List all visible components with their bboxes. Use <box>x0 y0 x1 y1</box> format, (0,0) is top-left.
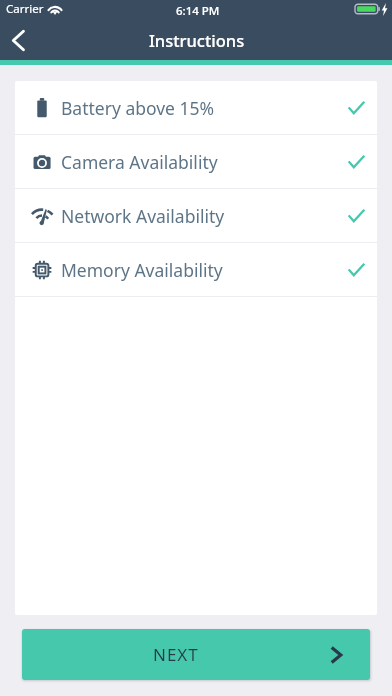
button[interactable]: Camera Availability <box>15 135 377 188</box>
staticText: Network Availability <box>61 204 225 228</box>
button[interactable]: Battery above 15% <box>15 81 377 134</box>
staticText: Battery above 15% <box>61 96 215 120</box>
staticText: NEXT <box>153 643 199 666</box>
button[interactable]: Network Availability <box>15 189 377 242</box>
staticText: 6:14 PM <box>176 3 220 19</box>
staticText: Carrier <box>6 1 44 17</box>
staticText: Camera Availability <box>61 150 218 174</box>
button[interactable]: Back <box>0 20 40 60</box>
button[interactable]: Memory Availability <box>15 243 377 296</box>
button[interactable]: NEXT <box>22 629 370 680</box>
staticText: Memory Availability <box>61 258 223 282</box>
staticText: Instructions <box>149 29 245 51</box>
